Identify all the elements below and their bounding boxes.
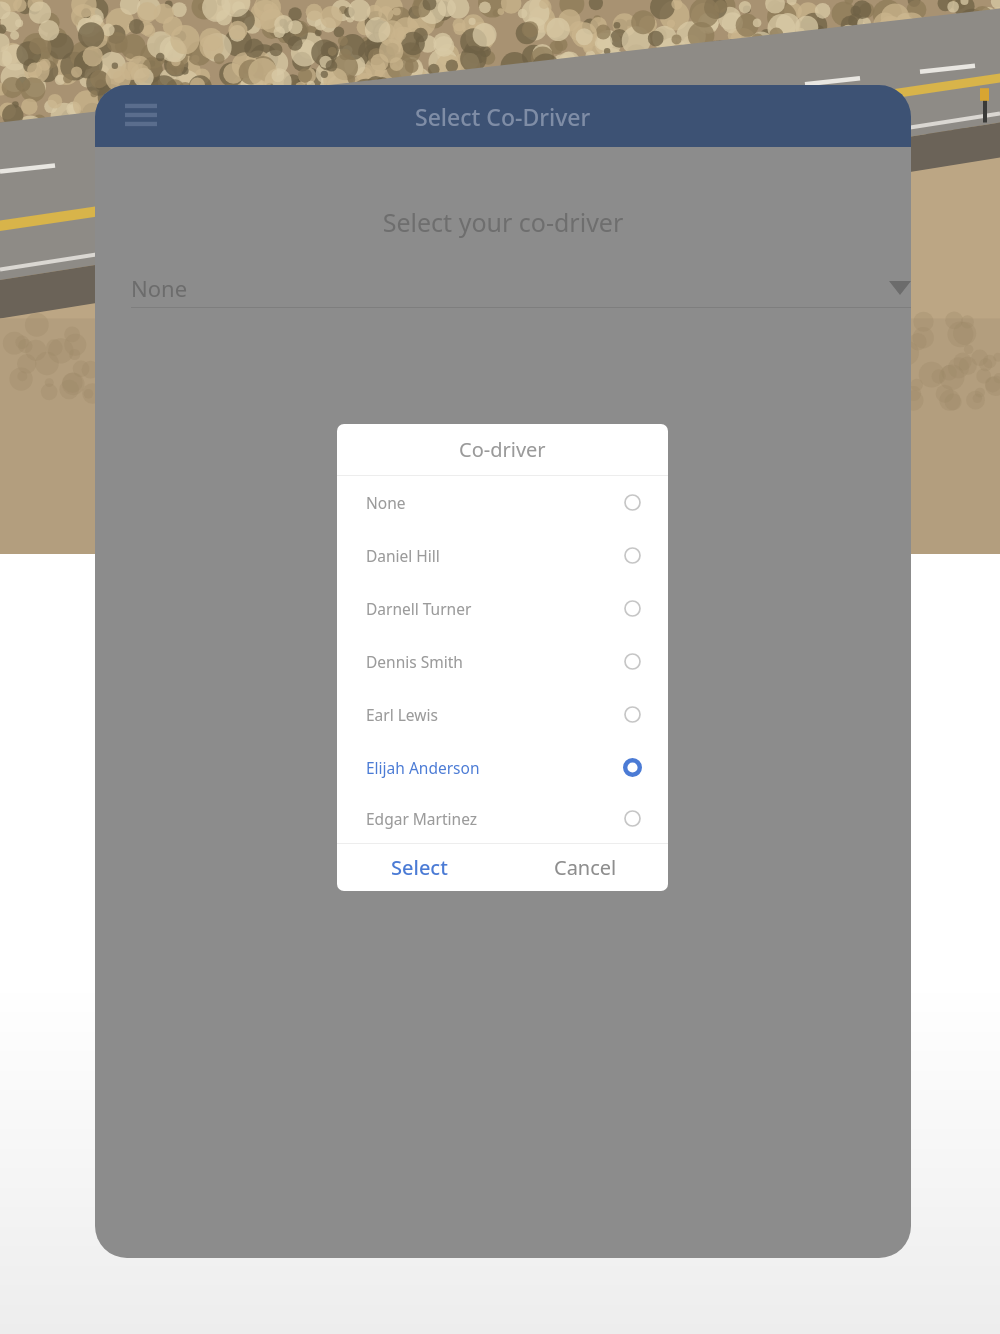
staticText: Dennis Smith	[366, 651, 463, 672]
button[interactable]: Darnell Turner	[337, 582, 668, 635]
button[interactable]: Select	[337, 844, 502, 891]
staticText: None	[131, 273, 188, 303]
staticText: Select your co-driver	[95, 205, 911, 239]
staticText: Darnell Turner	[366, 598, 472, 619]
staticText: Edgar Martinez	[366, 808, 478, 829]
staticText: Daniel Hill	[366, 545, 440, 566]
button[interactable]: Open navigation menu	[117, 93, 165, 141]
button[interactable]: Cancel	[502, 844, 668, 891]
button[interactable]: Dennis Smith	[337, 635, 668, 688]
staticText: Select	[391, 854, 448, 881]
staticText: Co-driver	[459, 436, 546, 463]
button[interactable]: Edgar Martinez	[337, 794, 668, 843]
button[interactable]: Earl Lewis	[337, 688, 668, 741]
staticText: Earl Lewis	[366, 704, 438, 725]
button[interactable]: None	[337, 476, 668, 529]
staticText: Select Co-Driver	[415, 101, 591, 132]
staticText: Cancel	[554, 854, 617, 881]
button[interactable]: Elijah Anderson	[337, 741, 668, 794]
button[interactable]: Daniel Hill	[337, 529, 668, 582]
button[interactable]: None	[131, 273, 911, 303]
staticText: None	[366, 492, 406, 513]
staticText: Elijah Anderson	[366, 757, 480, 778]
